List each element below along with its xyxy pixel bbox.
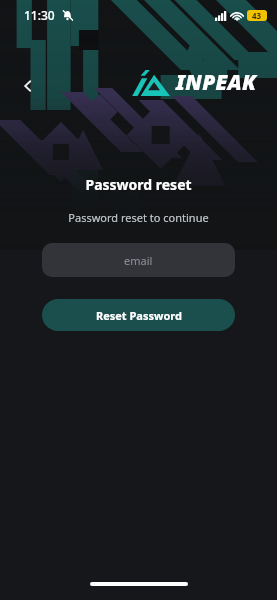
staticText: 43 — [252, 10, 262, 21]
button[interactable]: Back — [10, 68, 46, 104]
staticText: 11:30 — [24, 7, 55, 23]
staticText: INPEAK — [176, 68, 257, 97]
staticText: email — [124, 253, 153, 268]
button[interactable]: email — [42, 243, 235, 277]
staticText: Password reset — [85, 175, 192, 194]
button[interactable]: Reset Password — [42, 299, 235, 331]
staticText: Reset Password — [96, 308, 182, 323]
staticText: Password reset to continue — [68, 210, 209, 225]
